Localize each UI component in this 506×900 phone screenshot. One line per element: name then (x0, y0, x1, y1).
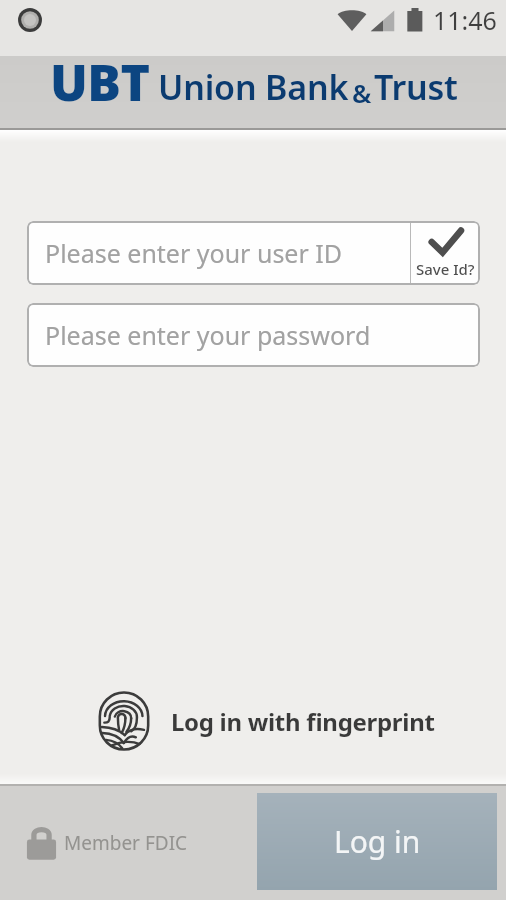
staticText: Please enter your user ID (45, 236, 343, 270)
staticText: Save Id? (416, 259, 475, 279)
button[interactable]: Log in (257, 793, 497, 890)
staticText: Log in with fingerprint (171, 705, 435, 738)
button[interactable]: Please enter your password (27, 303, 480, 367)
staticText: 11:46 (433, 3, 497, 37)
button[interactable]: Log in with fingerprint (98, 686, 435, 756)
staticText: Please enter your password (45, 318, 371, 352)
staticText: UBT (50, 48, 150, 116)
staticText: Log in (334, 821, 421, 862)
staticText: Union Bank (158, 64, 349, 110)
staticText: & (352, 75, 372, 110)
button[interactable]: Save Id (411, 221, 480, 285)
staticText: Member FDIC (64, 830, 188, 856)
button[interactable]: Please enter your user ID (27, 221, 410, 285)
staticText: Trust (374, 64, 458, 110)
button[interactable]: Member FDIC (26, 826, 188, 860)
